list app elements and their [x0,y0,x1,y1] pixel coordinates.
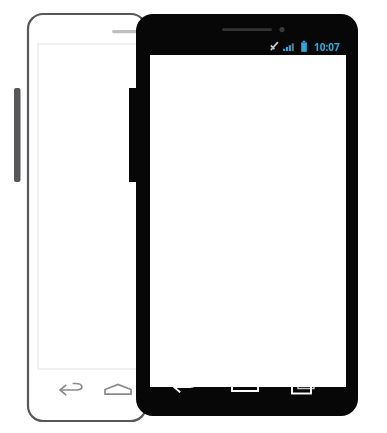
button[interactable]: White phone [14,14,146,421]
button[interactable]: Black phone [129,14,358,416]
